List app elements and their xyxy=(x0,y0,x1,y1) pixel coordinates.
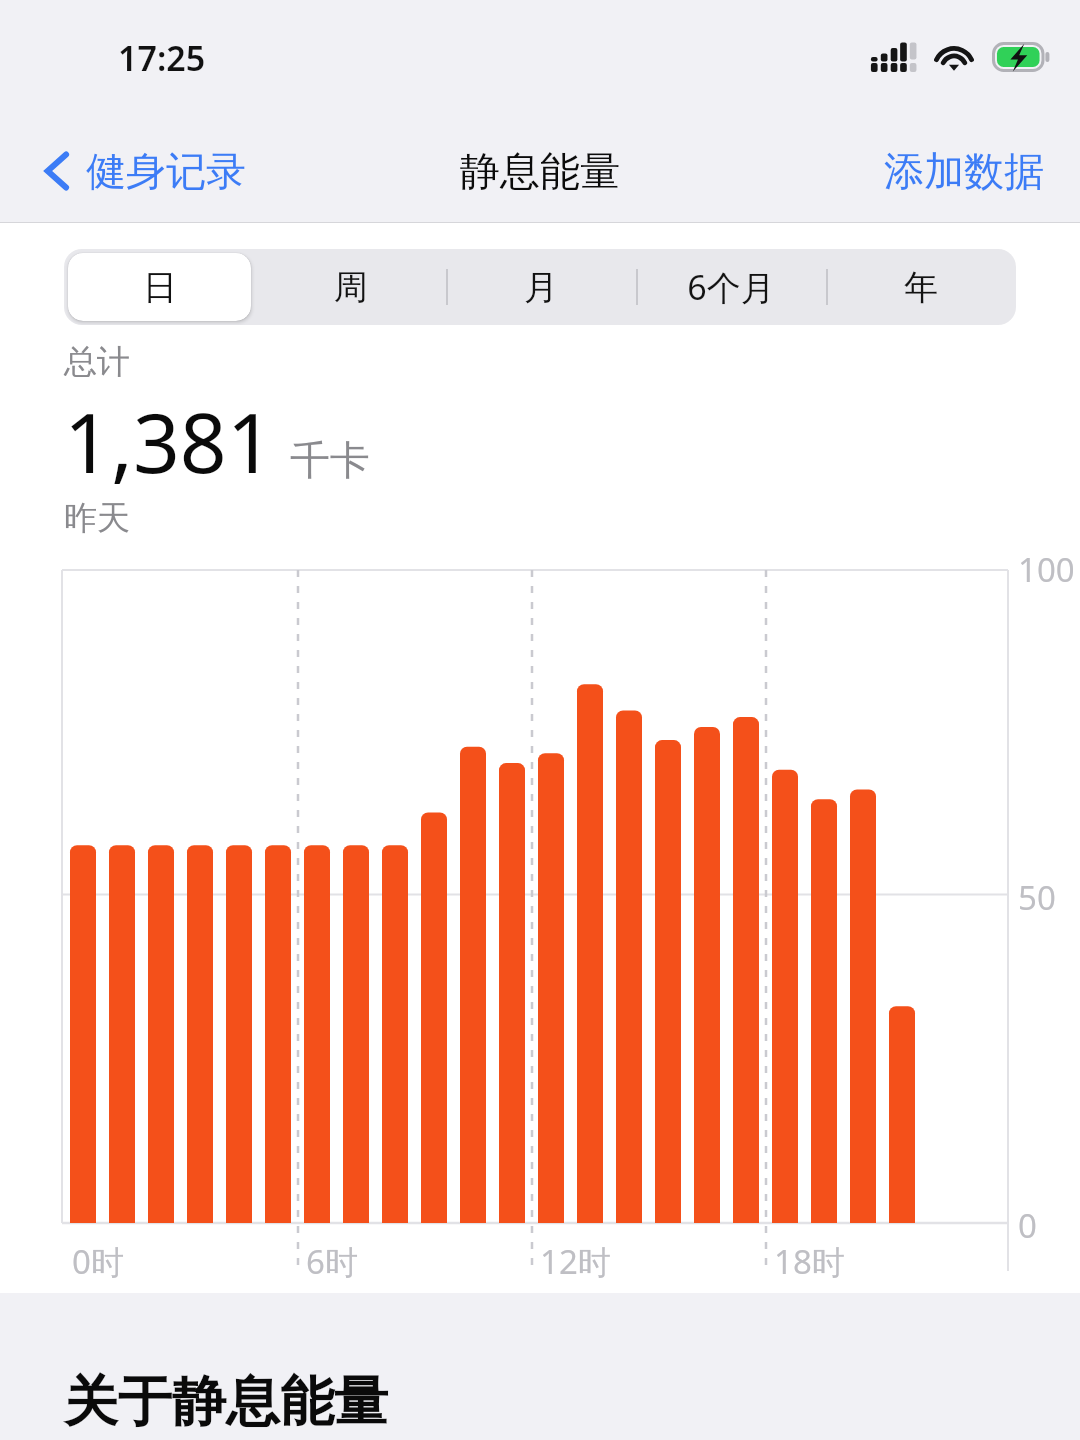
button[interactable]: 月 xyxy=(450,253,632,321)
staticText: 18时 xyxy=(774,1239,845,1284)
staticText: 0时 xyxy=(72,1239,124,1284)
button[interactable]: 日 xyxy=(68,253,251,321)
button[interactable]: 6个月 xyxy=(640,253,822,321)
staticText: 年 xyxy=(904,266,938,309)
staticText: 千卡 xyxy=(290,435,370,485)
staticText: 月 xyxy=(524,266,558,309)
staticText: 总计 xyxy=(64,341,130,383)
button[interactable]: 年 xyxy=(830,253,1012,321)
staticText: 50 xyxy=(1018,875,1056,920)
staticText: 12时 xyxy=(540,1239,611,1284)
staticText: 0 xyxy=(1018,1203,1037,1248)
staticText: 静息能量 xyxy=(460,146,620,196)
button[interactable]: 周 xyxy=(259,253,442,321)
staticText: 健身记录 xyxy=(86,146,246,196)
staticText: 日 xyxy=(143,266,177,309)
staticText: 1,381 xyxy=(64,385,274,497)
staticText: 关于静息能量 xyxy=(64,1368,388,1436)
other: 返回 xyxy=(44,148,70,194)
staticText: 昨天 xyxy=(64,497,130,539)
staticText: 周 xyxy=(334,266,368,309)
staticText: 6时 xyxy=(306,1239,358,1284)
button[interactable]: 添加数据 xyxy=(848,134,1080,208)
button[interactable]: 返回 xyxy=(0,134,264,208)
staticText: 17:25 xyxy=(118,35,206,81)
staticText: 6个月 xyxy=(687,264,775,310)
staticText: 100 xyxy=(1018,547,1075,592)
